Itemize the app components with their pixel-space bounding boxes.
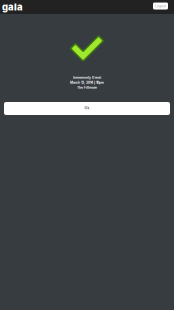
button[interactable]: gala — [0, 0, 23, 14]
staticText: The Fillmore — [77, 85, 97, 89]
button[interactable]: Ok — [4, 102, 170, 115]
staticText: Immensely Great — [73, 75, 101, 79]
staticText: Ok — [84, 106, 89, 110]
staticText: Logout — [155, 4, 166, 8]
staticText: gala — [2, 1, 23, 13]
staticText: March 13, 2014 | 10pm — [70, 80, 104, 84]
button[interactable]: Logout — [153, 2, 168, 11]
